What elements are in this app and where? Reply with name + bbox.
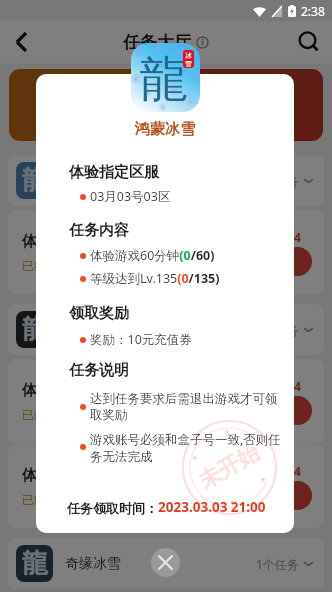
- button[interactable]: Back: [6, 27, 36, 57]
- button[interactable]: 体验指定区服: [8, 210, 324, 294]
- staticText: 游戏账号必须和盒子号一致,否则任务无法完成: [90, 431, 288, 465]
- staticText: 传奇世界: [65, 321, 121, 339]
- staticText: 等级达到Lv.135(0/135): [90, 270, 220, 287]
- button[interactable]: 龍: [8, 538, 324, 589]
- staticText: 4: [294, 463, 301, 479]
- staticText: 任务大厅: [123, 32, 191, 53]
- staticText: 未开始: [193, 438, 265, 496]
- staticText: 奇缘冰雪: [65, 555, 121, 573]
- staticText: 冰 雪: [185, 51, 192, 68]
- staticText: 达到任务要求后需退出游戏才可领取奖励: [90, 391, 288, 423]
- button[interactable]: Search: [294, 27, 324, 57]
- staticText: 鸿蒙冰雪: [36, 120, 294, 139]
- button[interactable]: Close: [151, 548, 180, 577]
- staticText: 领取奖励: [69, 304, 129, 323]
- staticText: 1个任务: [256, 173, 299, 189]
- staticText: 已结束: [22, 492, 58, 507]
- staticText: 03月03号03区: [90, 188, 171, 205]
- button[interactable]: 体验指定区服: [8, 444, 324, 528]
- button[interactable]: 龍: [8, 155, 324, 206]
- button[interactable]: Claim: [283, 481, 312, 510]
- staticText: 体验指定区服: [69, 163, 159, 182]
- staticText: 体验指定区服: [22, 232, 112, 251]
- button[interactable]: Claim: [283, 396, 312, 425]
- button[interactable]: 我的任务: [9, 69, 161, 141]
- staticText: 体验游戏60分钟(0/60): [90, 247, 215, 264]
- button[interactable]: 体验指定区服: [8, 359, 324, 443]
- staticText: 龍: [22, 313, 48, 346]
- staticText: 任务领取时间：: [67, 500, 158, 516]
- staticText: 已结束: [22, 407, 58, 422]
- staticText: 任务说明: [69, 361, 129, 380]
- staticText: 鸿蒙冰雪: [65, 172, 121, 190]
- staticText: 已结束: [22, 258, 58, 273]
- staticText: 任务内容: [69, 221, 129, 240]
- staticText: 4: [294, 378, 301, 394]
- staticText: 龍: [22, 164, 48, 197]
- staticText: 体验指定区服: [22, 466, 112, 485]
- staticText: 2023.03.03 21:00: [158, 498, 266, 516]
- staticText: 奖励：10元充值券: [90, 331, 192, 348]
- button[interactable]: Claim: [283, 247, 312, 276]
- button[interactable]: 龍: [8, 304, 324, 355]
- staticText: 2个任务: [256, 322, 299, 338]
- staticText: 1个任务: [256, 556, 299, 572]
- button[interactable]: Info: [196, 36, 209, 49]
- staticText: 龍: [22, 547, 48, 580]
- staticText: 龍: [139, 49, 188, 111]
- staticText: 体验指定区服: [22, 381, 112, 400]
- staticText: 4: [294, 229, 301, 245]
- button[interactable]: 任务攻略: [171, 69, 323, 141]
- staticText: 2:38: [301, 3, 325, 19]
